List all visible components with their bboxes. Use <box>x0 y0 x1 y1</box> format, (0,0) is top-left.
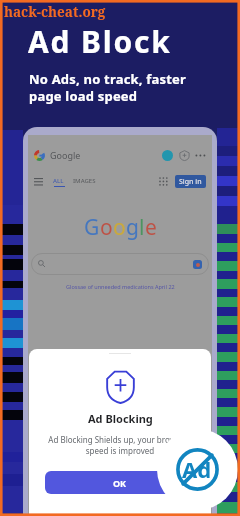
staticText: Google <box>50 149 81 161</box>
staticText: IMAGES <box>73 177 96 185</box>
staticText: l <box>139 213 145 242</box>
staticText: Ad Blocking <box>88 411 153 426</box>
staticText: No Ads, no track, faster page load speed <box>29 70 187 105</box>
button[interactable] <box>31 253 209 275</box>
staticText: Sign in <box>179 177 202 187</box>
button[interactable]: Ad Block logo <box>157 429 238 510</box>
staticText: OK <box>113 477 127 489</box>
staticText: Ad Block <box>28 21 172 62</box>
button[interactable]: Google <box>34 147 206 163</box>
staticText: g <box>126 213 139 242</box>
staticText: Ad Blocking Shields up, your browsing sp… <box>48 434 192 456</box>
button[interactable]: Sign in <box>175 175 206 188</box>
button[interactable]: OK <box>45 471 195 494</box>
staticText: G <box>84 213 100 242</box>
staticText: o <box>113 213 126 242</box>
staticText: e <box>145 213 157 242</box>
staticText: ALL <box>53 177 64 185</box>
staticText: Ad <box>182 454 212 484</box>
staticText: Glossae of unneeded medications April 22 <box>66 283 175 290</box>
staticText: hack-cheat.org <box>4 3 106 21</box>
staticText: o <box>100 213 113 242</box>
